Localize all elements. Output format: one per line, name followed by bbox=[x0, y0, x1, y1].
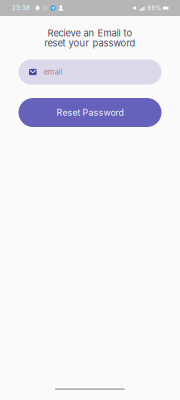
staticText: reset your password bbox=[44, 37, 135, 49]
staticText: 23:38 bbox=[12, 4, 30, 12]
button[interactable]: email bbox=[18, 59, 161, 84]
staticText: Reset Password bbox=[56, 107, 123, 118]
button[interactable]: Reset Password bbox=[18, 98, 161, 127]
staticText: email bbox=[44, 67, 63, 76]
staticText: Recieve an Email to bbox=[47, 27, 132, 39]
staticText: 68% bbox=[147, 4, 161, 12]
